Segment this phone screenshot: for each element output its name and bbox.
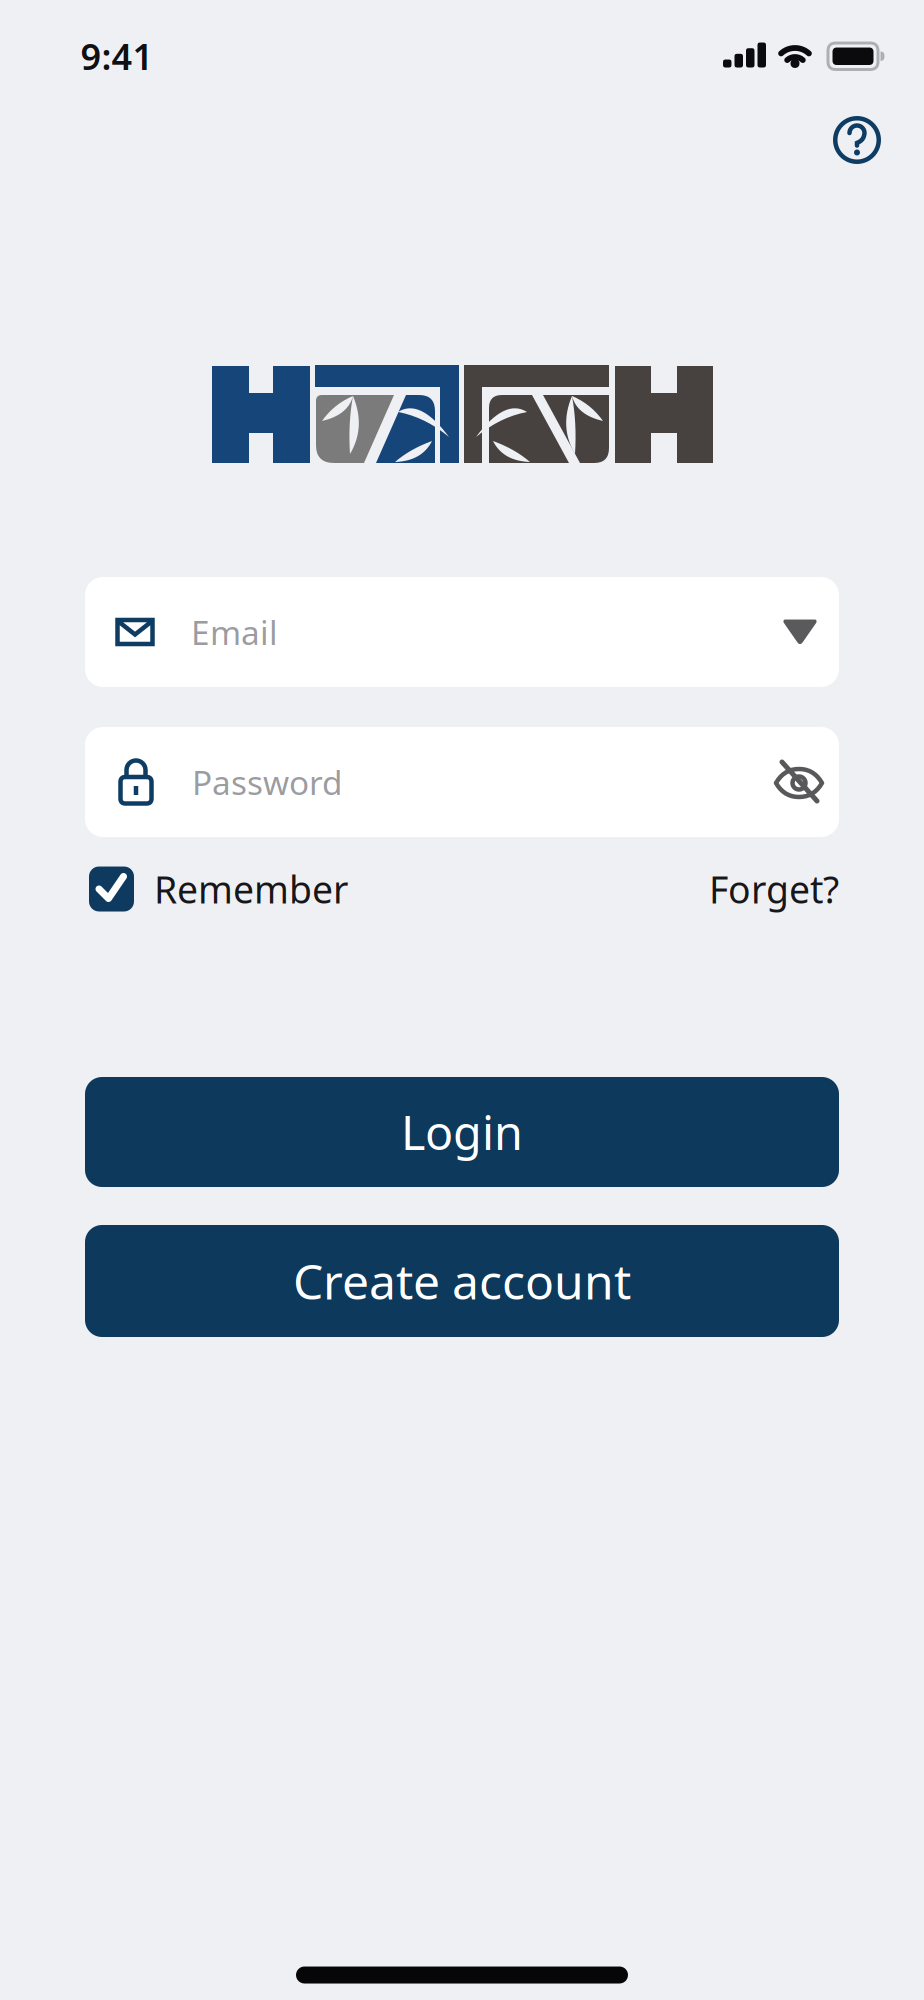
staticText: Password	[192, 760, 343, 804]
button[interactable]: Email	[85, 577, 839, 687]
staticText: Login	[401, 1101, 523, 1163]
button[interactable]: Forget?	[709, 864, 839, 914]
button[interactable]: Remember	[89, 864, 348, 914]
button[interactable]: Create account	[85, 1225, 839, 1337]
staticText: Forget?	[709, 864, 839, 914]
button[interactable]: Login	[85, 1077, 839, 1187]
staticText: Email	[191, 610, 278, 654]
staticText: Remember	[154, 864, 348, 914]
staticText: 9:41	[80, 32, 153, 80]
button[interactable]: Help	[829, 112, 885, 168]
button[interactable]: Password	[85, 727, 839, 837]
staticText: Create account	[293, 1249, 631, 1313]
button[interactable]: Show password	[773, 757, 825, 807]
